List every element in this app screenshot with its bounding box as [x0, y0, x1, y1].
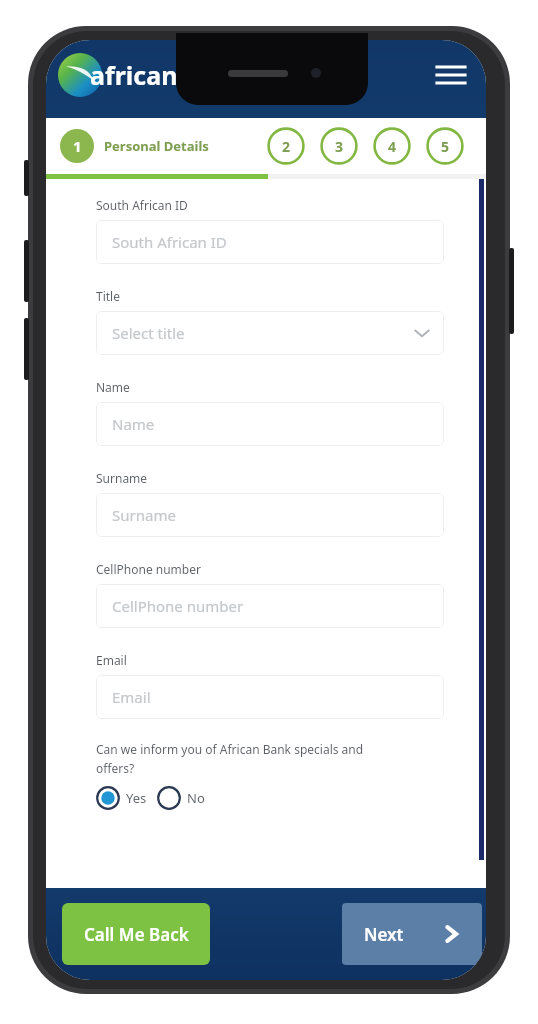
staticText: 3	[335, 137, 344, 156]
staticText: Email	[96, 652, 127, 668]
button[interactable]: CellPhone number	[96, 584, 444, 628]
button[interactable]: 1	[60, 129, 94, 163]
button[interactable]: No	[157, 786, 205, 810]
staticText: Select title	[112, 323, 185, 343]
staticText: Title	[96, 288, 120, 304]
staticText: africanbank	[90, 58, 240, 92]
staticText: Yes	[126, 789, 147, 807]
staticText: CellPhone number	[96, 561, 201, 577]
staticText: 5	[441, 137, 450, 156]
staticText: 4	[388, 137, 397, 156]
button[interactable]: 4	[372, 126, 412, 166]
button[interactable]: 5	[425, 126, 465, 166]
staticText: Can we inform you of African Bank specia…	[96, 741, 364, 776]
button[interactable]: South African ID	[96, 220, 444, 264]
staticText: Name	[96, 379, 130, 395]
button[interactable]: Name	[96, 402, 444, 446]
button[interactable]: Personal Details	[104, 137, 209, 155]
button[interactable]: 3	[319, 126, 359, 166]
staticText: CellPhone number	[112, 596, 244, 616]
staticText: Next	[364, 923, 404, 946]
button[interactable]: Next	[342, 903, 482, 965]
staticText: No	[187, 789, 205, 807]
staticText: 2	[282, 137, 291, 156]
staticText: Name	[112, 414, 155, 434]
button[interactable]: Call Me Back	[62, 903, 210, 965]
button[interactable]: 2	[266, 126, 306, 166]
button[interactable]: Menu	[430, 56, 472, 94]
staticText: Surname	[112, 505, 176, 525]
button[interactable]: Yes	[96, 786, 147, 810]
button[interactable]: African Bank home	[58, 53, 102, 97]
staticText: South African ID	[112, 232, 227, 252]
staticText: Email	[112, 687, 151, 707]
button[interactable]: Email	[96, 675, 444, 719]
staticText: South African ID	[96, 197, 188, 213]
button[interactable]: Select title	[96, 311, 444, 355]
staticText: Surname	[96, 470, 148, 486]
button[interactable]: Surname	[96, 493, 444, 537]
staticText: Call Me Back	[84, 923, 189, 946]
staticText: 1	[73, 136, 82, 156]
